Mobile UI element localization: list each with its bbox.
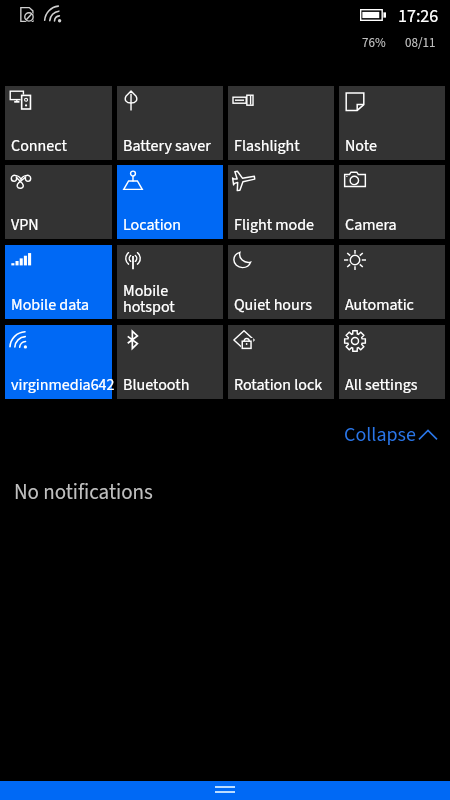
staticText: All settings	[345, 374, 450, 397]
staticText: Mobile	[123, 280, 229, 296]
staticText: Location	[123, 214, 229, 237]
staticText: 08/11	[405, 34, 436, 53]
button[interactable]: Location	[117, 165, 223, 239]
button[interactable]: virginmedia642	[5, 325, 112, 399]
button[interactable]: Automatic	[339, 245, 445, 319]
button[interactable]: Quiet hours	[228, 245, 334, 319]
button[interactable]: Camera	[339, 165, 445, 239]
button[interactable]: Collapse	[336, 414, 445, 456]
button[interactable]: Show navigation bar	[0, 781, 450, 800]
button[interactable]: Connect	[5, 86, 112, 160]
staticText: Camera	[345, 214, 450, 237]
button[interactable]: Rotation lock	[228, 325, 334, 399]
button[interactable]: Bluetooth	[117, 325, 223, 399]
button[interactable]: Mobile	[117, 245, 223, 319]
staticText: 76%	[362, 34, 386, 53]
button[interactable]: Mobile data	[5, 245, 112, 319]
button[interactable]: Battery saver	[117, 86, 223, 160]
staticText: Flight mode	[234, 214, 340, 237]
staticText: Connect	[11, 135, 118, 158]
staticText: Collapse	[344, 421, 416, 449]
button[interactable]: Note	[339, 86, 445, 160]
staticText: VPN	[11, 214, 118, 237]
button[interactable]: All settings	[339, 325, 445, 399]
staticText: Quiet hours	[234, 294, 340, 317]
button[interactable]: VPN	[5, 165, 112, 239]
staticText: Bluetooth	[123, 374, 229, 397]
staticText: Battery saver	[123, 135, 229, 158]
staticText: No notifications	[14, 477, 153, 507]
staticText: hotspot	[123, 296, 229, 312]
button[interactable]: Flashlight	[228, 86, 334, 160]
staticText: Automatic	[345, 294, 450, 317]
staticText: Mobile data	[11, 294, 118, 317]
staticText: Flashlight	[234, 135, 340, 158]
staticText: Rotation lock	[234, 374, 340, 397]
staticText: Note	[345, 135, 450, 158]
staticText: 17:26	[398, 4, 439, 30]
staticText: virginmedia642	[11, 374, 118, 397]
button[interactable]: Flight mode	[228, 165, 334, 239]
